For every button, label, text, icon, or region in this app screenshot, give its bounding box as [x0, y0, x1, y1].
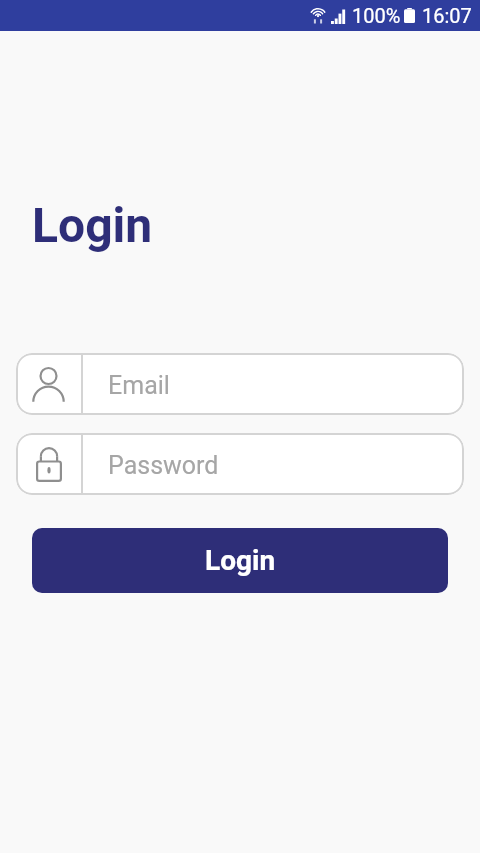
staticText: Email: [108, 371, 170, 400]
staticText: 16:07: [422, 4, 472, 27]
staticText: Login: [205, 544, 276, 577]
button[interactable]: Login: [32, 528, 448, 593]
staticText: Password: [108, 451, 219, 480]
staticText: 100%: [352, 4, 401, 27]
button[interactable]: Password: [16, 433, 464, 495]
staticText: Login: [32, 197, 153, 253]
button[interactable]: Email: [16, 353, 464, 415]
